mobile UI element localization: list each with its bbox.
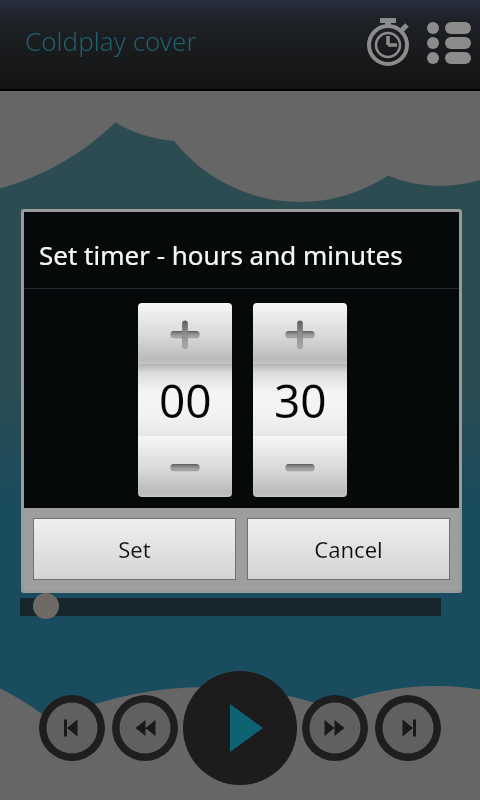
staticText: 30 xyxy=(274,369,327,432)
button[interactable]: Cancel xyxy=(248,519,449,579)
button[interactable]: Set xyxy=(34,519,235,579)
button[interactable] xyxy=(253,303,347,364)
staticText: Set timer - hours and minutes xyxy=(39,237,403,272)
staticText: 00 xyxy=(159,369,212,432)
button[interactable] xyxy=(253,436,347,497)
button[interactable] xyxy=(138,436,232,497)
button[interactable]: Timer xyxy=(362,16,414,68)
staticText: Coldplay cover xyxy=(25,23,197,58)
staticText: Cancel xyxy=(314,534,383,564)
button[interactable] xyxy=(138,303,232,364)
staticText: Set xyxy=(118,534,151,564)
button[interactable]: Playlist xyxy=(424,18,472,66)
